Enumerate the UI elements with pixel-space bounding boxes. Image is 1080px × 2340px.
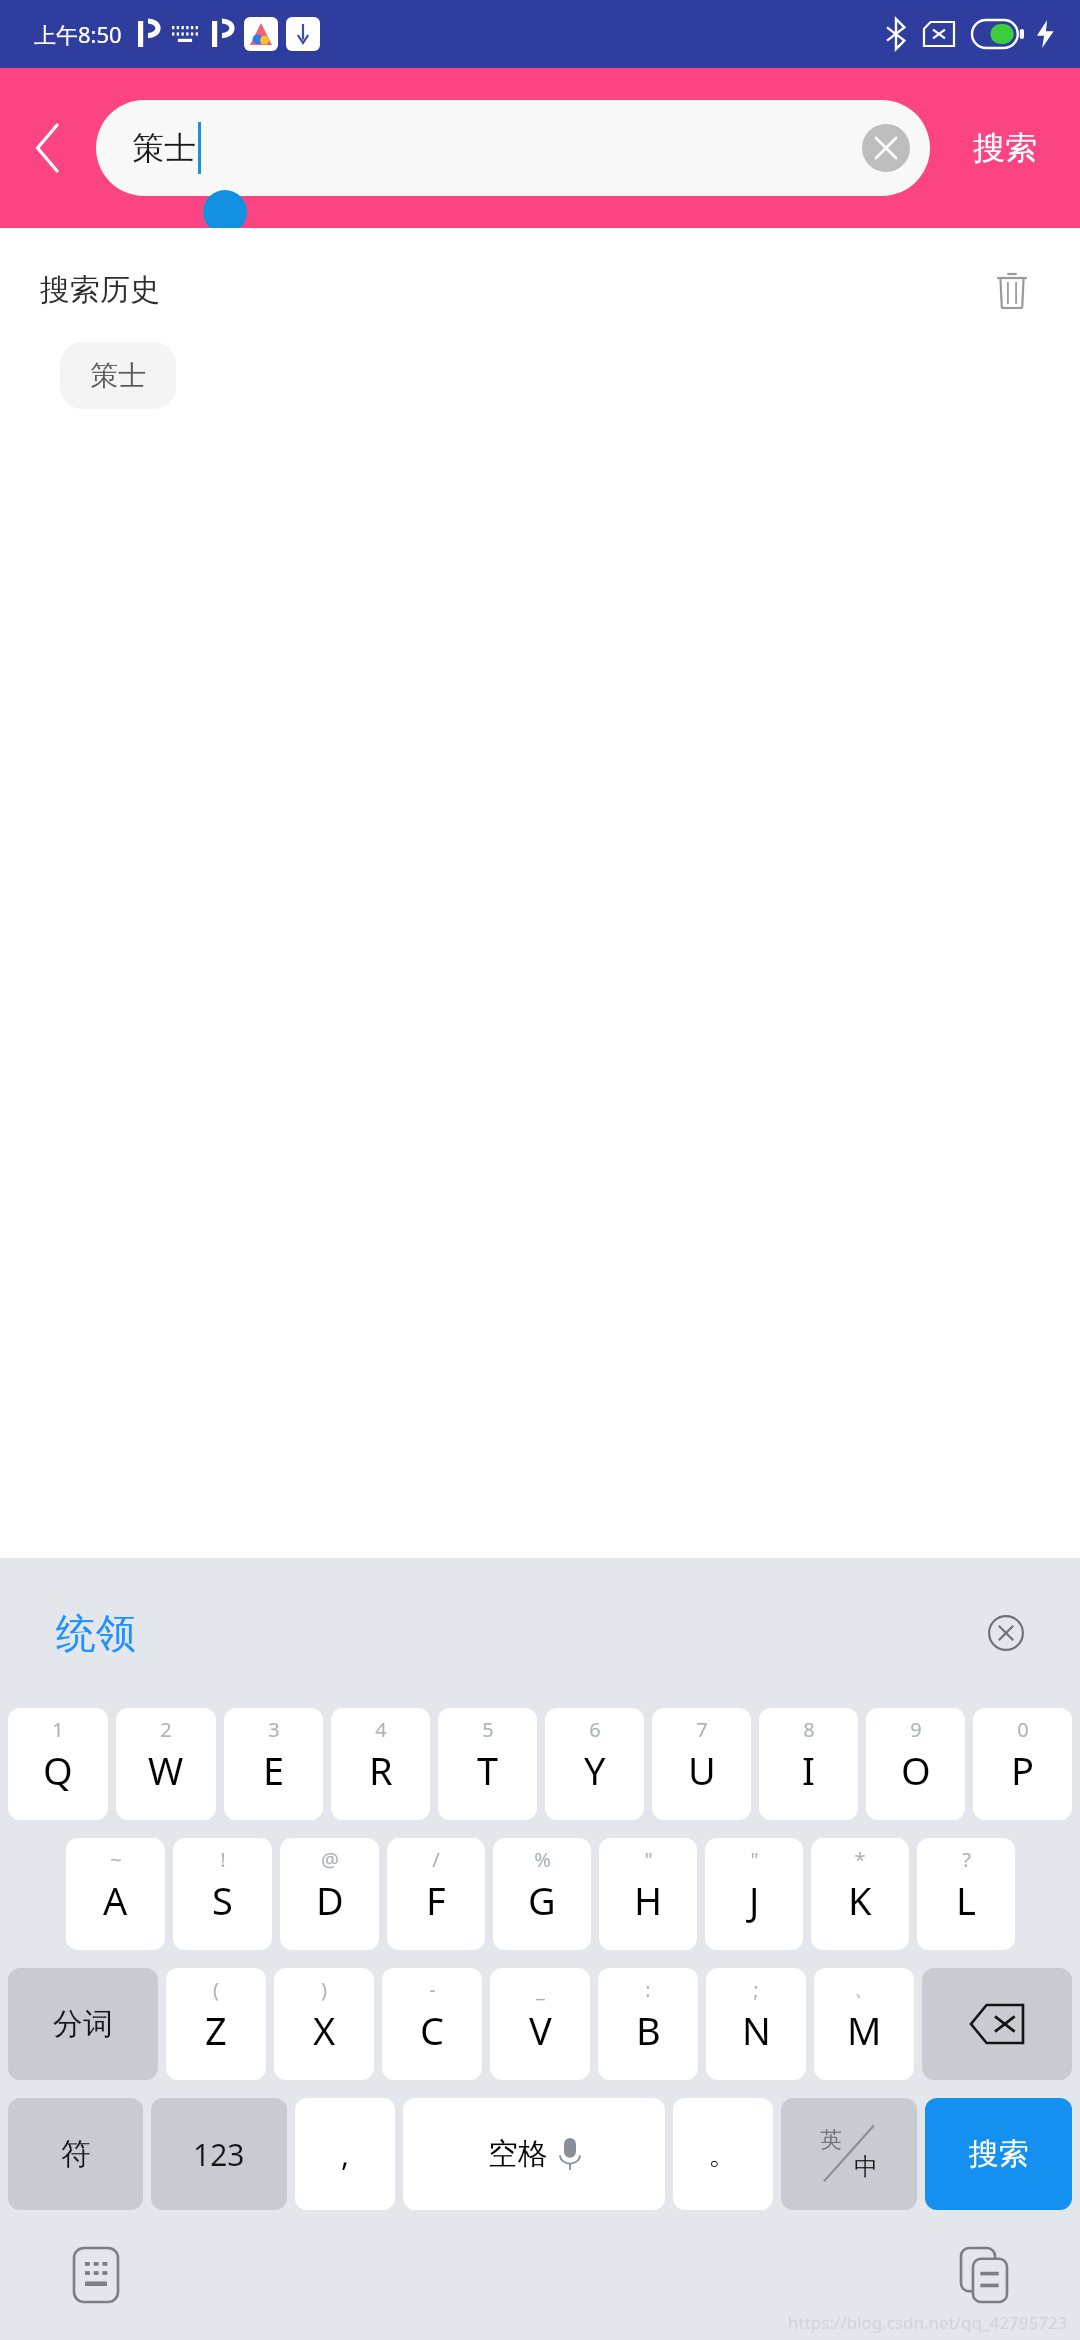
staticText: L [956, 1874, 976, 1926]
button[interactable]: 8 [759, 1708, 858, 1820]
staticText: 6 [589, 1716, 601, 1743]
button[interactable]: 。 [673, 2098, 773, 2210]
button[interactable]: ( [166, 1968, 266, 2080]
button[interactable]: Backspace [922, 1968, 1072, 2080]
other: Bluetooth [886, 19, 906, 49]
staticText: 123 [193, 2134, 245, 2175]
staticText: 9 [910, 1716, 922, 1743]
button[interactable]: , [295, 2098, 395, 2210]
staticText: 1 [52, 1716, 64, 1743]
staticText: " [750, 1846, 759, 1873]
button[interactable]: 分词 [8, 1968, 158, 2080]
staticText: X [313, 2004, 336, 2056]
staticText: K [848, 1874, 872, 1926]
button[interactable]: 3 [224, 1708, 323, 1820]
staticText: ( [213, 1976, 219, 2003]
staticText: 搜索 [969, 2135, 1029, 2173]
staticText: C [420, 2004, 445, 2056]
button[interactable]: ; [706, 1968, 806, 2080]
button[interactable]: 符 [8, 2098, 143, 2210]
staticText: 4 [375, 1716, 387, 1743]
button[interactable]: 5 [438, 1708, 537, 1820]
button[interactable]: Clear history [984, 262, 1040, 318]
staticText: 中 [854, 2152, 878, 2182]
button[interactable]: Close candidates [980, 1607, 1032, 1659]
button[interactable]: 6 [545, 1708, 644, 1820]
staticText: J [749, 1874, 760, 1926]
staticText: W [148, 1744, 184, 1796]
staticText: S [212, 1874, 233, 1926]
staticText: E [263, 1744, 285, 1796]
button[interactable]: ! [173, 1838, 272, 1950]
button[interactable]: ~ [66, 1838, 165, 1950]
button[interactable]: 123 [151, 2098, 287, 2210]
button[interactable]: 策士 [60, 342, 176, 409]
button[interactable]: * [811, 1838, 909, 1950]
button[interactable]: 搜索 [930, 68, 1080, 228]
staticText: 空格 [488, 2135, 548, 2173]
button[interactable]: 9 [866, 1708, 965, 1820]
staticText: 符 [61, 2135, 91, 2173]
button[interactable]: % [493, 1838, 591, 1950]
staticText: D [316, 1874, 344, 1926]
button[interactable]: 英 [781, 2098, 917, 2210]
staticText: M [847, 2004, 882, 2056]
staticText: 搜索 [973, 128, 1037, 168]
button[interactable]: 策士 [96, 100, 930, 196]
staticText: 3 [268, 1716, 280, 1743]
staticText: 上午8:50 [34, 19, 122, 49]
staticText: 英 [820, 2126, 842, 2154]
button[interactable]: 4 [331, 1708, 430, 1820]
button[interactable]: 搜索 [925, 2098, 1072, 2210]
button[interactable]: 2 [116, 1708, 216, 1820]
button[interactable]: 0 [973, 1708, 1072, 1820]
staticText: 策士 [90, 358, 146, 393]
staticText: I [802, 1744, 815, 1796]
staticText: : [645, 1976, 651, 2003]
staticText: H [634, 1874, 663, 1926]
staticText: U [688, 1744, 716, 1796]
button[interactable]: Switch keyboard [66, 2245, 126, 2305]
button[interactable]: : [598, 1968, 698, 2080]
button[interactable]: Back [0, 68, 96, 228]
staticText: % [534, 1846, 551, 1873]
staticText: 、 [854, 1976, 874, 2001]
staticText: V [529, 2004, 552, 2056]
staticText: 7 [696, 1716, 708, 1743]
staticText: A [103, 1874, 128, 1926]
staticText: _ [536, 1976, 545, 2003]
staticText: 5 [482, 1716, 494, 1743]
button[interactable]: ? [917, 1838, 1015, 1950]
staticText: N [742, 2004, 771, 2056]
button[interactable]: @ [280, 1838, 379, 1950]
staticText: 搜索历史 [40, 271, 160, 309]
staticText: T [477, 1744, 499, 1796]
staticText: * [854, 1846, 866, 1873]
button[interactable]: / [387, 1838, 485, 1950]
staticText: R [369, 1744, 393, 1796]
button[interactable]: 统领 [56, 1608, 136, 1658]
staticText: F [426, 1874, 446, 1926]
staticText: ) [321, 1976, 327, 2003]
button[interactable]: Clear [862, 124, 910, 172]
staticText: ! [220, 1846, 226, 1873]
staticText: Z [205, 2004, 227, 2056]
staticText: 8 [803, 1716, 815, 1743]
button[interactable]: " [705, 1838, 803, 1950]
button[interactable]: 、 [814, 1968, 914, 2080]
staticText: , [341, 2134, 350, 2175]
button[interactable]: ) [274, 1968, 374, 2080]
button[interactable]: Clipboard [954, 2245, 1014, 2305]
staticText: Q [43, 1744, 73, 1796]
button[interactable]: " [599, 1838, 697, 1950]
button[interactable]: - [382, 1968, 482, 2080]
button[interactable]: 1 [8, 1708, 108, 1820]
button[interactable]: 7 [652, 1708, 751, 1820]
staticText: 0 [1017, 1716, 1029, 1743]
staticText: O [901, 1744, 931, 1796]
staticText: " [644, 1846, 653, 1873]
button[interactable]: _ [490, 1968, 590, 2080]
staticText: ~ [110, 1846, 122, 1873]
staticText: @ [321, 1846, 339, 1873]
button[interactable]: 空格 [403, 2098, 665, 2210]
